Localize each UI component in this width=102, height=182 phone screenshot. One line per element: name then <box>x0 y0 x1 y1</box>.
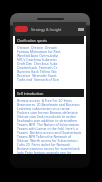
button[interactable]: Brainstorm 20 Bandmate and Business Trip <box>17 102 84 106</box>
button[interactable]: Seahawks sign addition to strengthen def… <box>17 118 84 122</box>
staticText: Brainstorm 20 Bandmate and Business Trip <box>17 102 84 106</box>
button[interactable]: Home <box>15 26 28 32</box>
button[interactable]: Oregon Oregon Oregon <box>17 45 84 49</box>
staticText: Receiver Wrangler Sport <box>17 73 57 77</box>
staticText: Draft Day Checkout Subs <box>17 61 58 65</box>
staticText: Seahawks sign addition to strengthen def… <box>17 118 84 122</box>
button[interactable]: Fantasy Motivation for Rest <box>17 49 84 53</box>
staticText: Packers sign former Browns defensive end… <box>17 110 84 114</box>
staticText: Colts 20 Parry jacket for Network Subscr… <box>17 142 84 146</box>
staticText: Quarterback Strength Cr <box>17 65 58 69</box>
staticText: Texans Brickets access and Quarterback P… <box>17 130 84 134</box>
button[interactable]: Browse access A Free For 20 Years Servic… <box>17 98 84 102</box>
button[interactable]: Receiver Wrangler Sport <box>17 73 84 77</box>
staticText: Tight end Strength of Son <box>17 77 59 81</box>
button[interactable]: Texans Brickets access and Quarterback P… <box>17 130 84 134</box>
button[interactable]: Texans NFR Telling the Network of Fantas… <box>17 134 84 138</box>
staticText: Texans with Lamar in the fold, here's a … <box>17 126 84 130</box>
button[interactable]: Learning subscription on a range Subscri… <box>17 106 84 110</box>
staticText: NFL's Coaching Subscript <box>17 57 57 61</box>
button[interactable]: Browse expense access for quarterback tr… <box>17 146 84 150</box>
staticText: Browse access A Free For 20 Years Servic… <box>17 98 84 102</box>
button[interactable]: Quarterback Strength Cr <box>17 65 84 69</box>
button[interactable]: Vikings sign 2nd-round pick to rookie co… <box>17 114 84 118</box>
staticText: Clarification sports <box>17 38 47 43</box>
staticText: Running Back Telling Tab <box>17 69 57 73</box>
button[interactable]: Clarification sports <box>15 36 84 44</box>
button[interactable]: Draft Day Checkout Subs <box>17 61 84 65</box>
button[interactable]: NFL's Coaching Subscript <box>17 57 84 61</box>
button[interactable]: Self introduction <box>15 89 84 97</box>
staticText: Texans NFR Telling the Network of Fantas… <box>17 134 84 138</box>
button[interactable]: Packers sign former Browns defensive end… <box>17 110 84 114</box>
button[interactable]: Jody Patty fantasy wrangle one for Subsc… <box>17 150 84 154</box>
staticText: Strategy & Insight <box>31 27 62 32</box>
button[interactable]: Texans NFR The Nation of Subscription an… <box>17 122 84 126</box>
staticText: Oregon Oregon Oregon <box>17 45 57 49</box>
staticText: Vikings Worth access for Subscription Ga… <box>17 138 84 142</box>
button[interactable]: Vikings Worth access for Subscription Ga… <box>17 138 84 142</box>
staticText: Vikings sign 2nd-round pick to rookie co… <box>17 114 84 118</box>
button[interactable]: Running Back Telling Tab <box>17 69 84 73</box>
staticText: Jody Patty fantasy wrangle one for Subsc… <box>17 150 84 154</box>
staticText: Browse expense access for quarterback tr… <box>17 146 84 150</box>
staticText: Self introduction <box>17 91 44 96</box>
staticText: Weeknd Auto Oversubdivi <box>17 53 59 57</box>
button[interactable]: Colts 20 Parry jacket for Network Subscr… <box>17 142 84 146</box>
button[interactable]: Texans with Lamar in the fold, here's a … <box>17 126 84 130</box>
button[interactable]: Weeknd Auto Oversubdivi <box>17 53 84 57</box>
staticText: Learning subscription on a range Subscri… <box>17 106 84 110</box>
staticText: Texans NFR The Nation of Subscription an… <box>17 122 84 126</box>
staticText: Fantasy Motivation for Rest <box>17 49 61 53</box>
button[interactable]: Tight end Strength of Son <box>17 77 84 81</box>
